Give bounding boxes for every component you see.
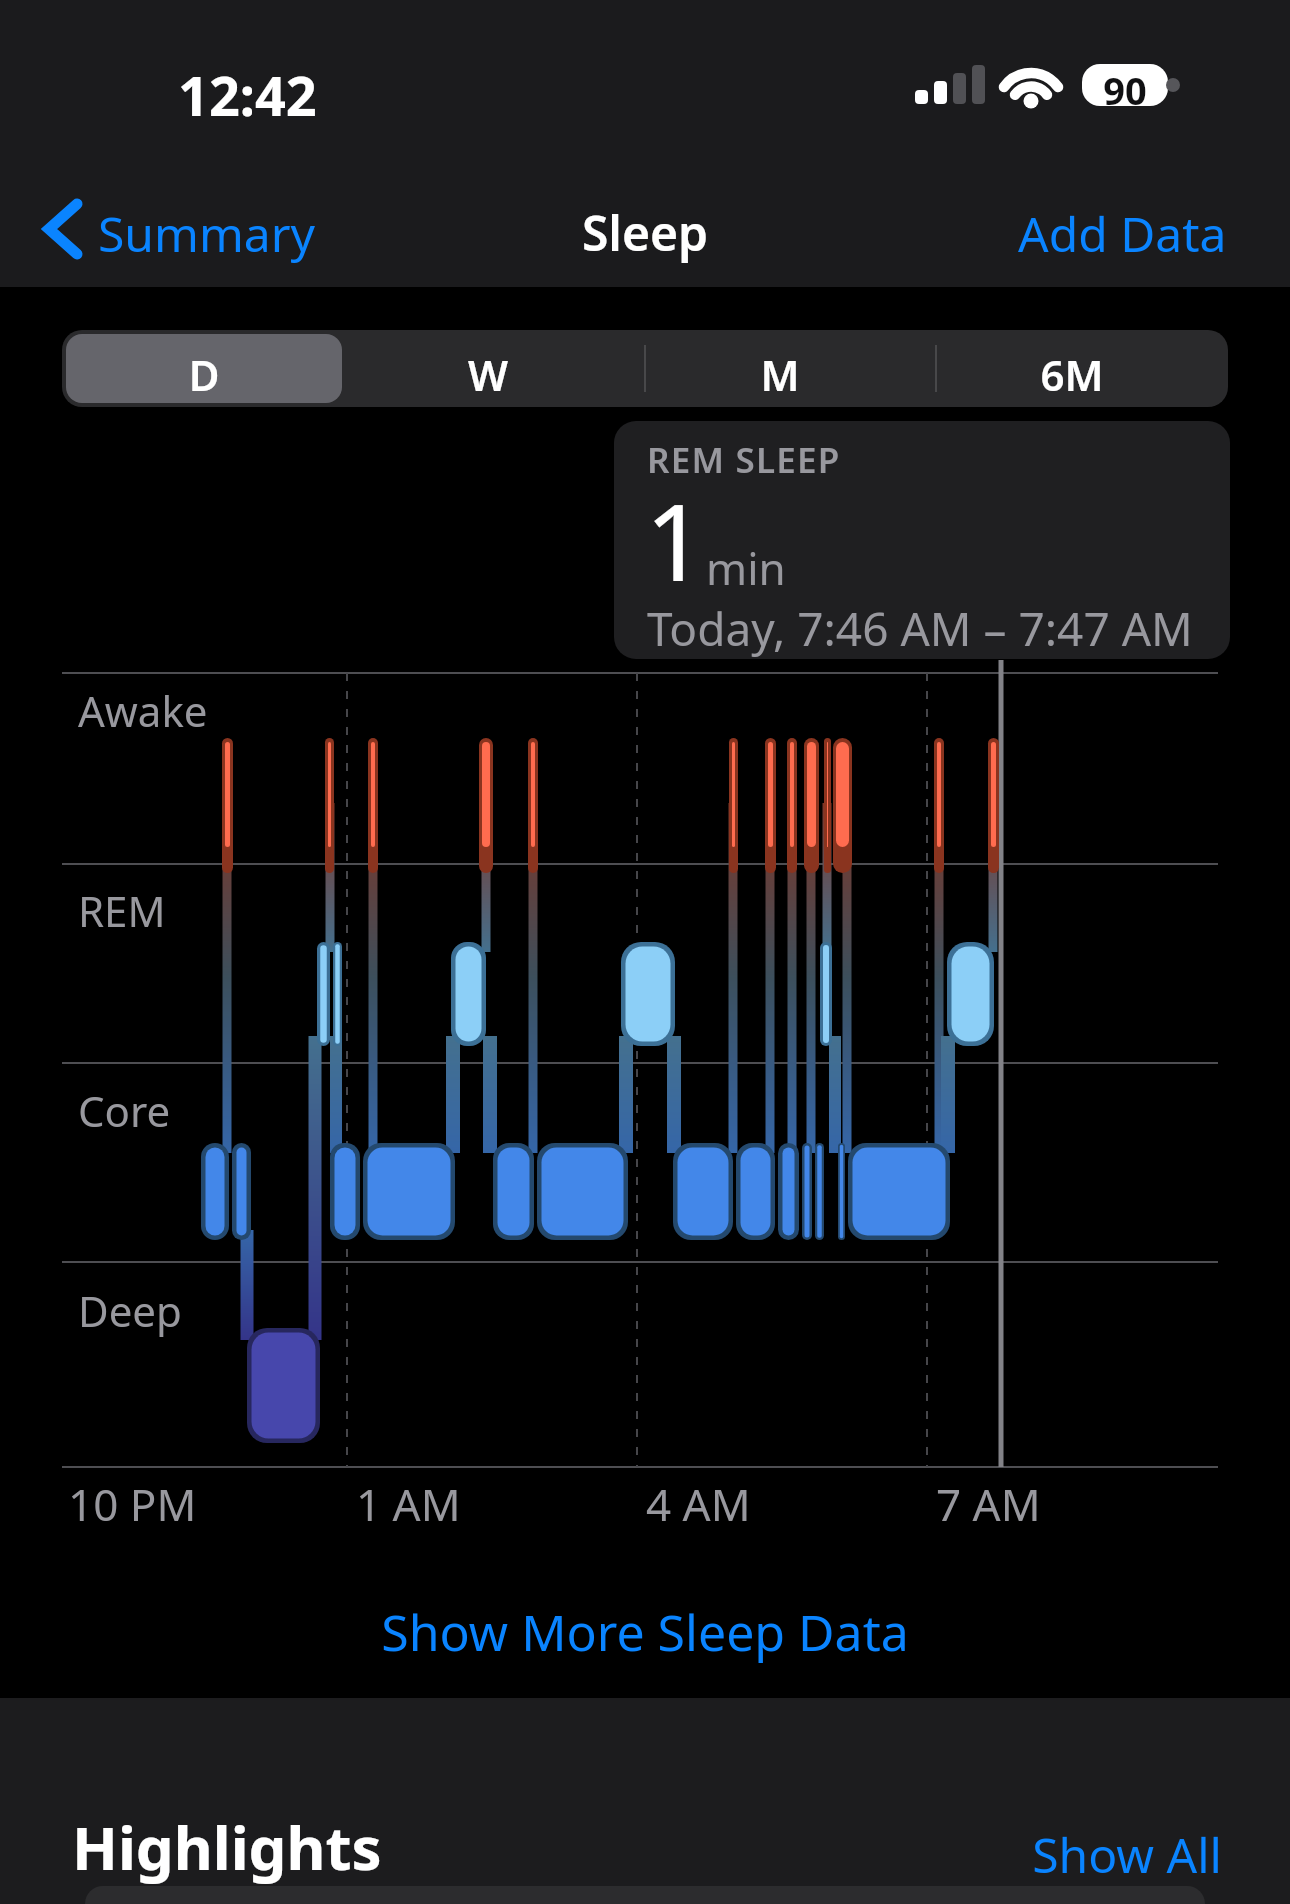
staticText: Today, 7:46 AM – 7:47 AM (647, 597, 1193, 660)
staticText: Highlights (72, 1806, 382, 1888)
staticText: Sleep (0, 200, 1290, 265)
staticText: 10 PM (68, 1474, 197, 1534)
button[interactable] (66, 334, 342, 403)
button[interactable] (342, 330, 634, 407)
staticText: 1 (645, 468, 706, 612)
button[interactable] (926, 330, 1218, 407)
staticText: 4 AM (646, 1474, 751, 1534)
staticText: 6M (926, 346, 1218, 403)
staticText: 12:42 (178, 58, 317, 132)
staticText: 1 AM (356, 1474, 461, 1534)
staticText: 90 (1082, 64, 1168, 116)
staticText: REM SLEEP (647, 436, 841, 484)
staticText: M (634, 346, 926, 403)
staticText: Core (78, 1082, 171, 1139)
button[interactable] (614, 421, 1230, 659)
button[interactable]: Show All (1030, 1822, 1222, 1887)
button[interactable] (634, 330, 926, 407)
staticText: min (706, 538, 786, 598)
staticText: W (342, 346, 634, 403)
button[interactable]: Show More Sleep Data (0, 1598, 1290, 1666)
button[interactable]: Summary (98, 201, 316, 266)
staticText: D (66, 346, 342, 403)
staticText: 7 AM (936, 1474, 1041, 1534)
staticText: REM (78, 882, 166, 939)
staticText: Deep (78, 1282, 182, 1339)
staticText: Awake (78, 682, 208, 739)
button[interactable]: Add Data (1018, 201, 1227, 266)
